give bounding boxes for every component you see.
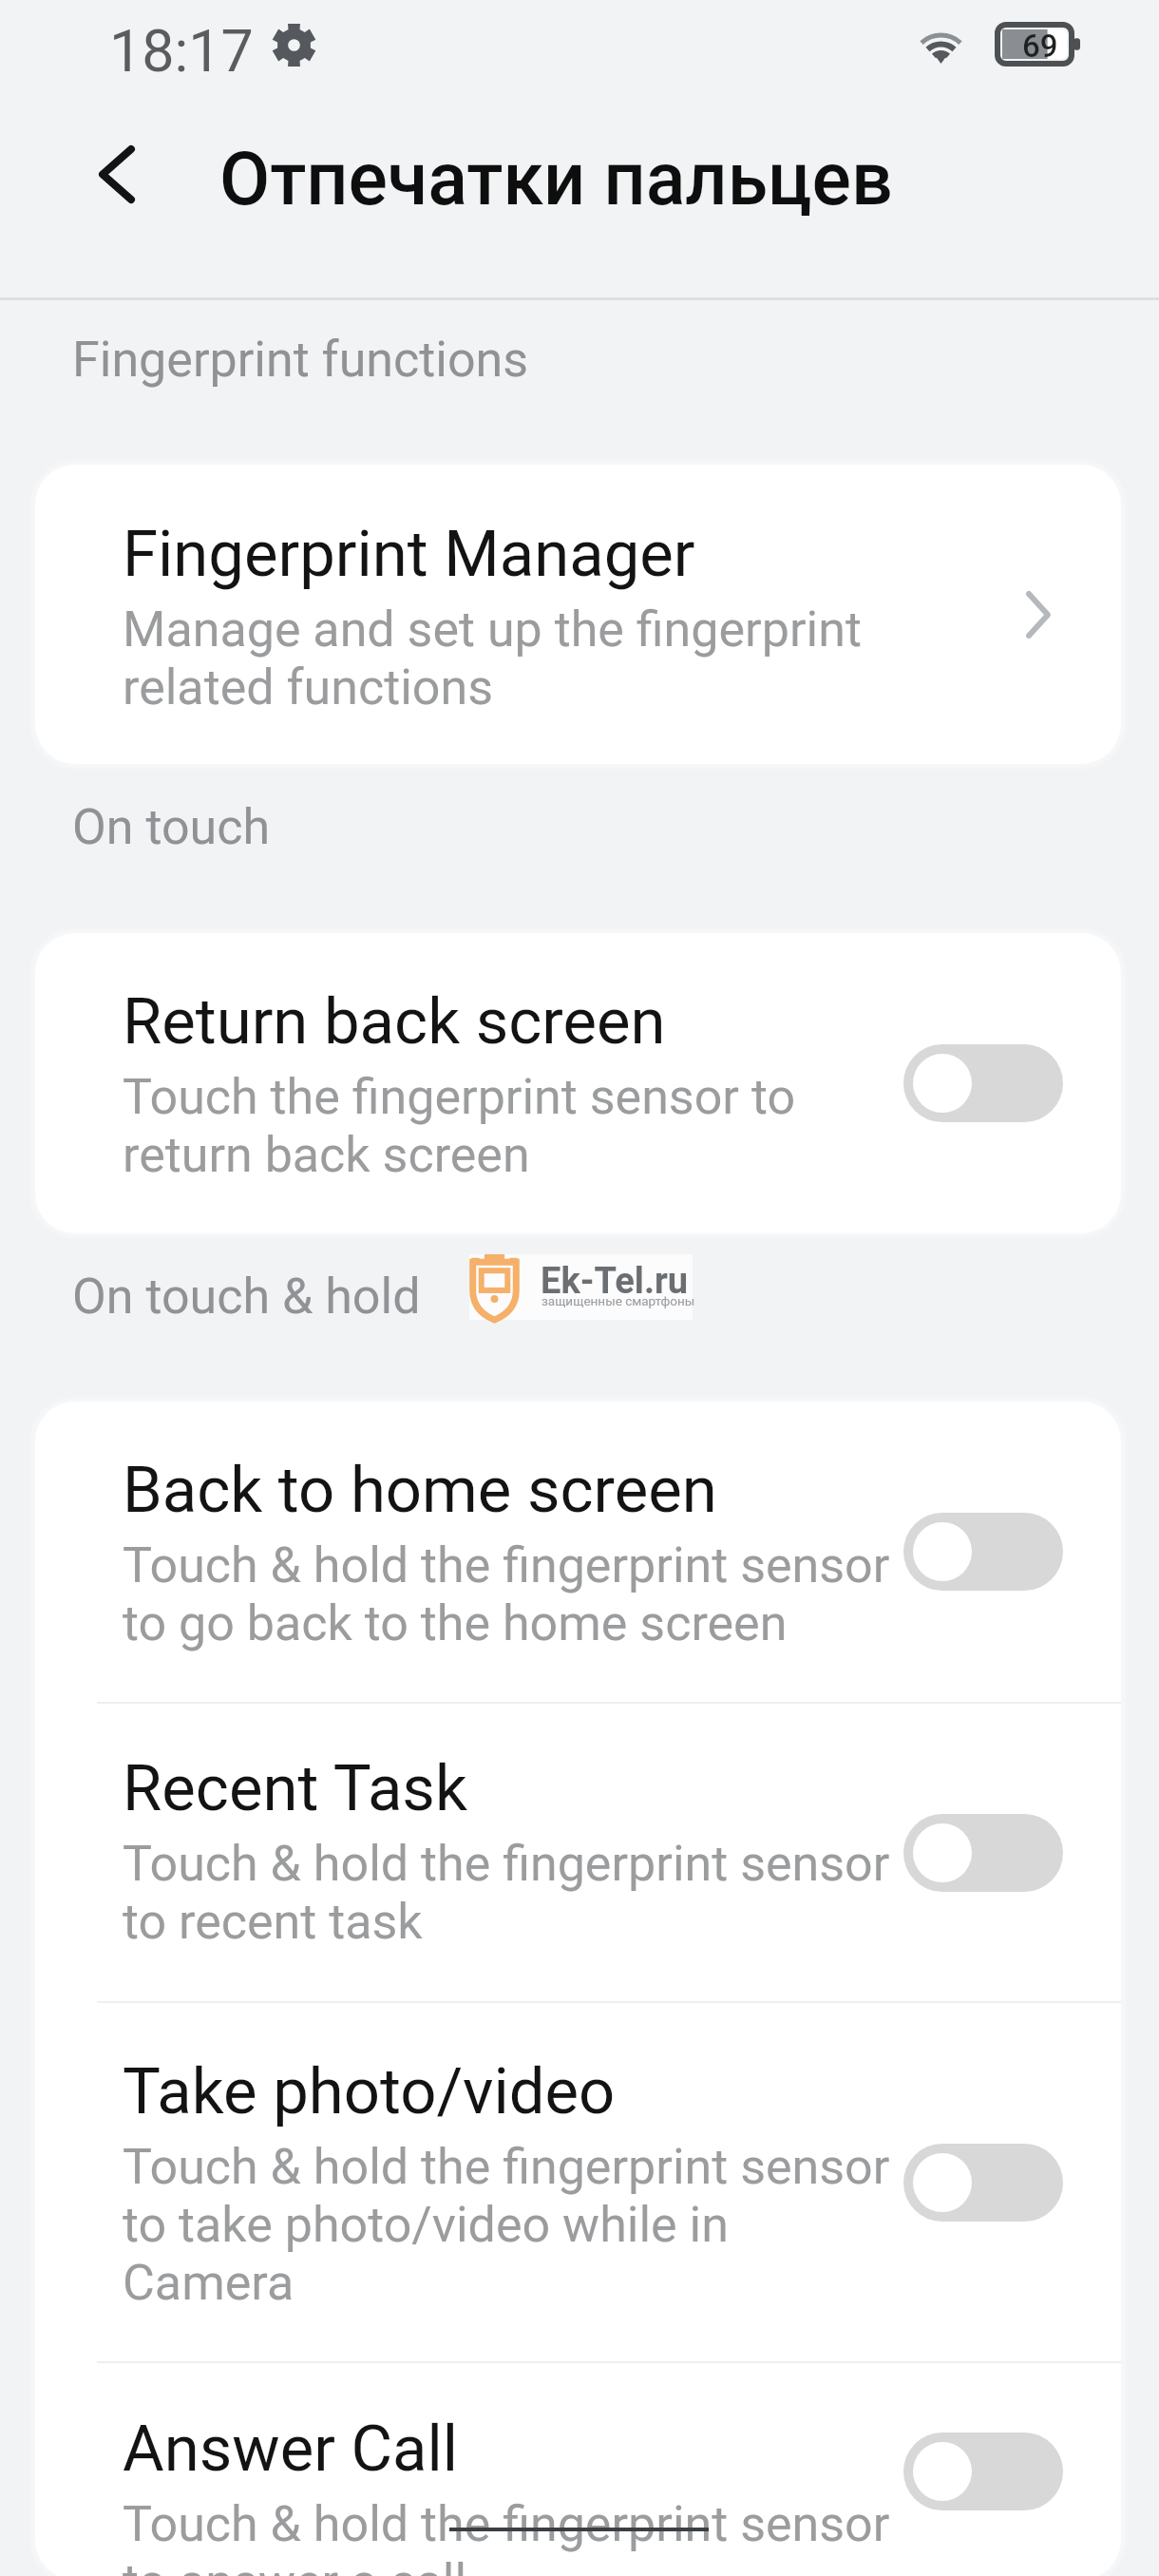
staticText: Отпечатки пальцев — [219, 138, 893, 221]
staticText: Touch the fingerprint sensor to return b… — [123, 1068, 902, 1184]
staticText: Recent Task — [123, 1753, 467, 1825]
button[interactable]: Toggle switch — [903, 1513, 1063, 1591]
staticText: Answer Call — [123, 2414, 459, 2486]
staticText: On touch & hold — [72, 1268, 421, 1326]
button[interactable]: Return back screen — [35, 933, 1121, 1233]
staticText: 18:17 — [109, 20, 254, 85]
button[interactable]: Fingerprint Manager — [35, 465, 1121, 764]
button[interactable]: Toggle switch — [903, 1044, 1063, 1122]
staticText: Back to home screen — [123, 1455, 717, 1527]
staticText: Take photo/video — [123, 2056, 616, 2128]
staticText: Ek-Tel.ru — [541, 1263, 689, 1302]
staticText: защищенные смартфоны — [541, 1294, 695, 1308]
staticText: Fingerprint functions — [72, 331, 529, 389]
staticText: Touch & hold the fingerprint sensor to t… — [123, 2138, 902, 2312]
staticText: 69 — [1022, 30, 1058, 64]
staticText: Touch & hold the fingerprint sensor to r… — [123, 1835, 902, 1951]
staticText: Fingerprint Manager — [123, 519, 695, 591]
staticText: On touch — [72, 798, 271, 856]
staticText: Return back screen — [123, 986, 666, 1059]
staticText: Touch & hold the fingerprint sensor to g… — [123, 1536, 902, 1652]
button[interactable]: Back — [67, 124, 166, 223]
button[interactable]: Toggle switch — [903, 2144, 1063, 2222]
button[interactable]: Answer Call — [35, 2363, 1121, 2576]
button[interactable]: Toggle switch — [903, 2433, 1063, 2510]
staticText: Manage and set up the fingerprint relate… — [123, 601, 902, 716]
button[interactable]: Back to home screen — [35, 1402, 1121, 1702]
button[interactable]: Take photo/video — [35, 2003, 1121, 2361]
staticText: Touch & hold the fingerprint sensor to a… — [123, 2495, 902, 2576]
button[interactable]: Toggle switch — [903, 1814, 1063, 1892]
button[interactable]: Recent Task — [35, 1704, 1121, 2001]
